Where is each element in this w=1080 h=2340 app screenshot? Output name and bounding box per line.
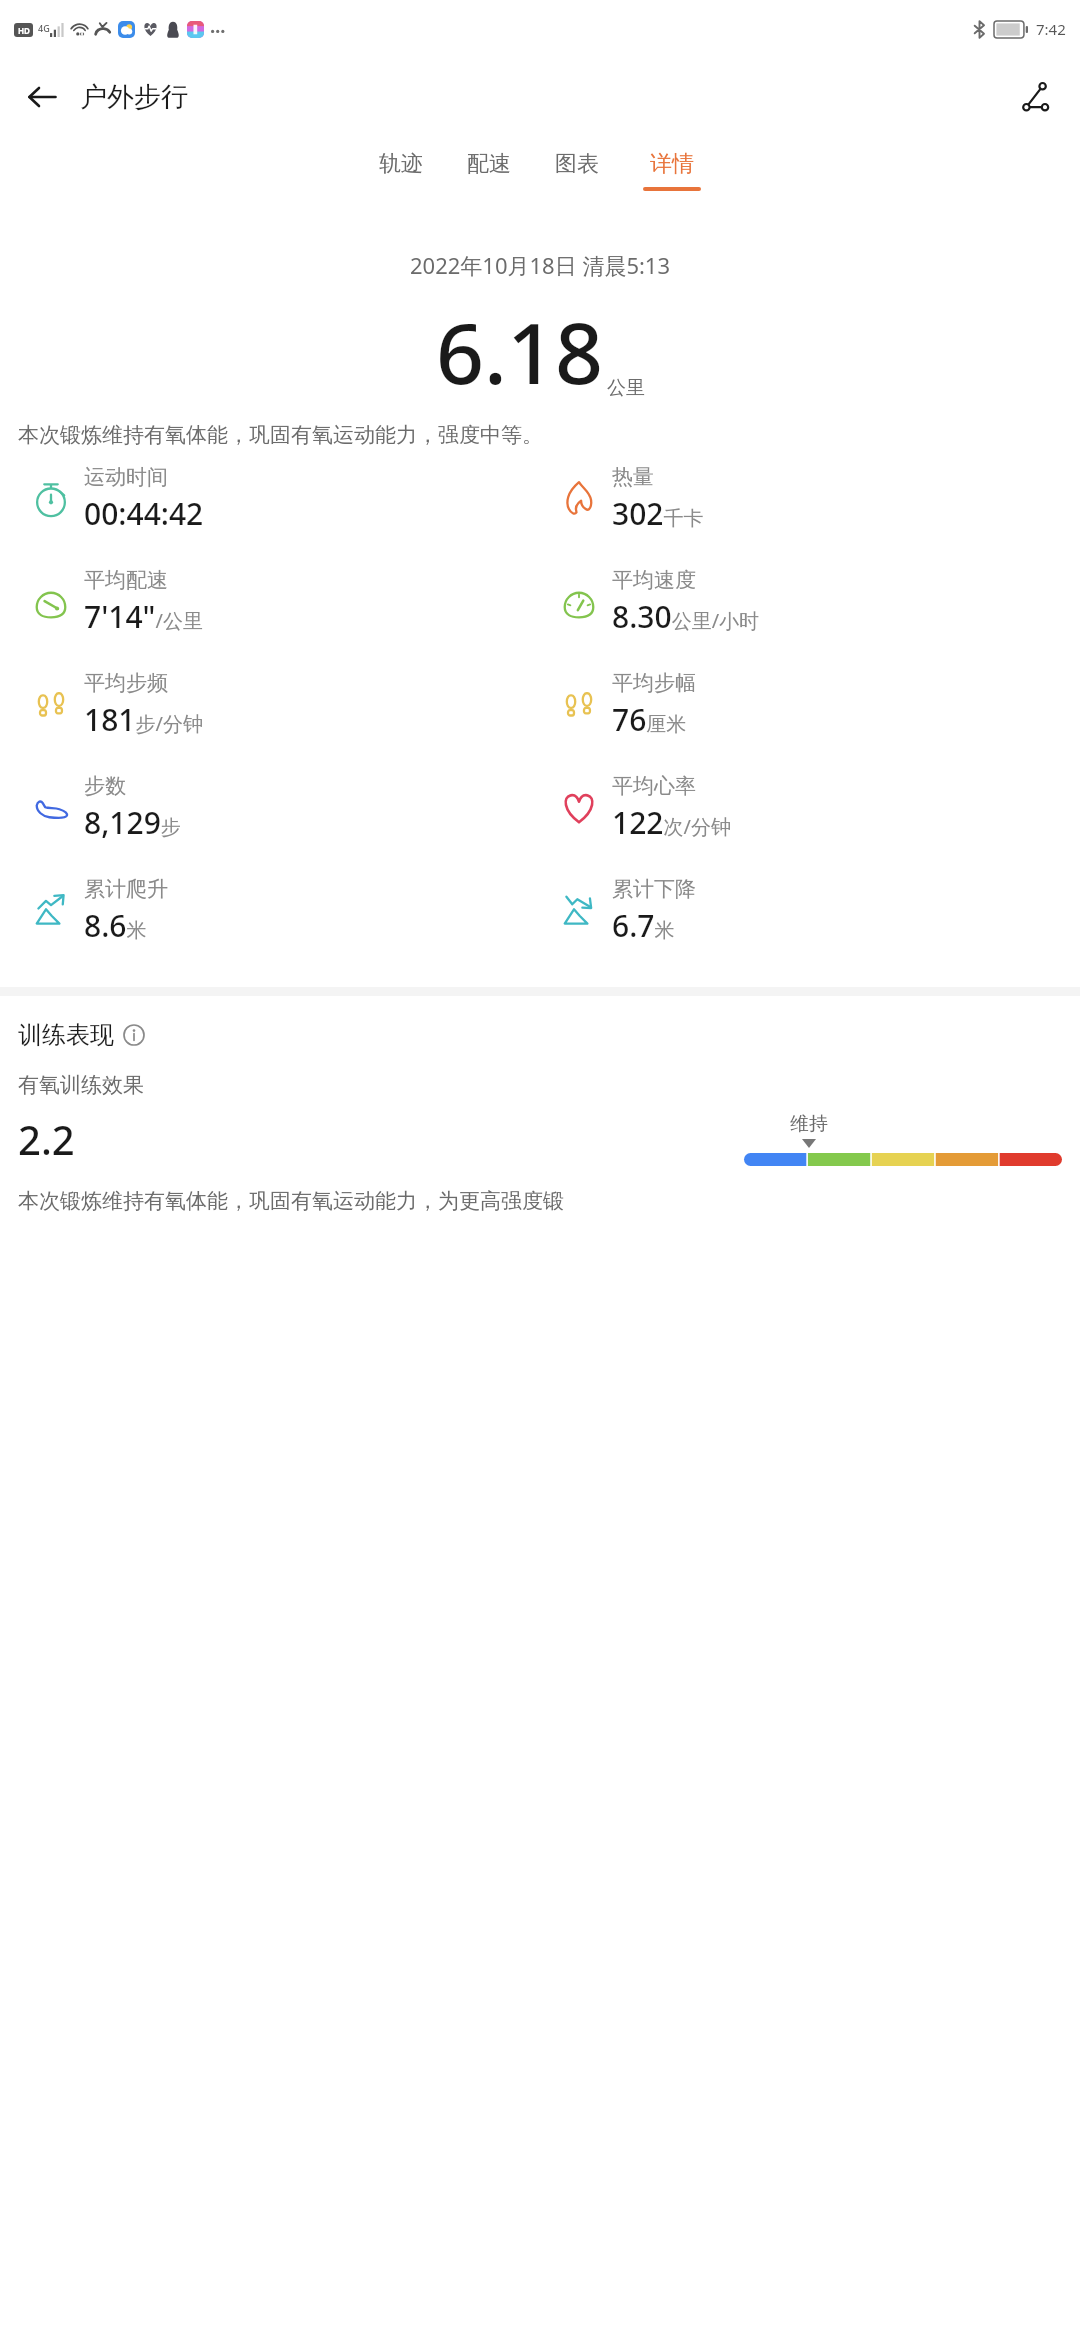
- button[interactable]: 平均速度: [546, 567, 1080, 637]
- staticText: 轨迹: [379, 150, 423, 178]
- button[interactable]: 累计下降: [546, 876, 1080, 946]
- staticText: 2022年10月18日 清晨5:13: [410, 250, 671, 280]
- button[interactable]: 训练表现: [18, 1020, 145, 1050]
- staticText: 6.7米: [612, 905, 675, 946]
- staticText: 平均速度: [612, 567, 696, 593]
- staticText: 平均心率: [612, 773, 696, 799]
- staticText: 平均步频: [84, 670, 168, 696]
- staticText: 户外步行: [80, 80, 188, 114]
- staticText: 8.30公里/小时: [612, 596, 760, 637]
- staticText: 本次锻炼维持有氧体能，巩固有氧运动能力，强度中等。: [18, 422, 1062, 448]
- staticText: 6.18: [436, 294, 603, 408]
- button[interactable]: 配速: [467, 136, 511, 191]
- staticText: 平均配速: [84, 567, 168, 593]
- button[interactable]: 累计爬升: [18, 876, 540, 946]
- staticText: 平均步幅: [612, 670, 696, 696]
- button[interactable]: 运动时间: [18, 464, 540, 534]
- staticText: 00:44:42: [84, 493, 204, 534]
- button[interactable]: 平均步频: [18, 670, 540, 740]
- other: Info: [123, 1024, 145, 1046]
- button[interactable]: 图表: [555, 136, 599, 191]
- staticText: 2.2: [18, 1112, 75, 1166]
- staticText: 有氧训练效果: [18, 1072, 144, 1098]
- staticText: 8,129步: [84, 802, 181, 843]
- button[interactable]: 轨迹: [379, 136, 423, 191]
- staticText: 302千卡: [612, 493, 704, 534]
- staticText: 公里: [607, 376, 645, 400]
- button[interactable]: Share: [1008, 69, 1064, 125]
- staticText: 训练表现: [18, 1020, 114, 1050]
- staticText: 76厘米: [612, 699, 687, 740]
- staticText: 累计爬升: [84, 876, 168, 902]
- staticText: 步数: [84, 773, 126, 799]
- staticText: 配速: [467, 150, 511, 178]
- button[interactable]: Back: [14, 69, 70, 125]
- staticText: 7:42: [1036, 19, 1066, 39]
- button[interactable]: 热量: [546, 464, 1080, 534]
- staticText: 8.6米: [84, 905, 147, 946]
- staticText: 累计下降: [612, 876, 696, 902]
- staticText: 122次/分钟: [612, 802, 731, 843]
- staticText: 4G: [38, 22, 50, 34]
- button[interactable]: 平均配速: [18, 567, 540, 637]
- staticText: 本次锻炼维持有氧体能，巩固有氧运动能力，为更高强度锻: [18, 1188, 564, 1214]
- staticText: HD: [18, 25, 30, 36]
- button[interactable]: 平均心率: [546, 773, 1080, 843]
- staticText: 运动时间: [84, 464, 168, 490]
- staticText: 图表: [555, 150, 599, 178]
- button[interactable]: 详情: [643, 136, 701, 191]
- staticText: 热量: [612, 464, 654, 490]
- staticText: 7'14"/公里: [84, 596, 203, 637]
- staticText: 维持: [790, 1112, 828, 1136]
- staticText: 181步/分钟: [84, 699, 203, 740]
- staticText: 详情: [650, 150, 694, 178]
- button[interactable]: 步数: [18, 773, 540, 843]
- button[interactable]: 平均步幅: [546, 670, 1080, 740]
